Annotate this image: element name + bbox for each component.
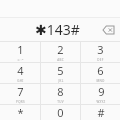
staticText: 7 [17, 84, 24, 99]
button[interactable]: 8 [41, 84, 80, 104]
staticText: 2 [57, 42, 64, 57]
staticText: * [17, 105, 24, 120]
staticText: ✱143# [35, 20, 80, 39]
button[interactable]: 9 [81, 84, 120, 104]
staticText: ABC [57, 58, 64, 62]
staticText: 0 [57, 105, 64, 120]
staticText: 5 [57, 63, 64, 78]
staticText: 1 [17, 42, 24, 57]
staticText: 9 [98, 84, 105, 99]
staticText: 8 [57, 84, 64, 99]
button[interactable]: 0 [41, 105, 80, 120]
staticText: # [97, 105, 105, 120]
staticText: 3 [97, 42, 104, 57]
staticText: 4 [17, 63, 24, 78]
button[interactable]: 4 [0, 63, 40, 83]
staticText: MNO [96, 79, 105, 83]
staticText: JKL [58, 79, 64, 83]
staticText: GHI [17, 79, 24, 83]
button[interactable]: 5 [41, 63, 80, 83]
staticText: 6 [97, 63, 104, 78]
button[interactable]: 7 [0, 84, 40, 104]
button[interactable]: * [0, 105, 40, 120]
button[interactable]: 3 [81, 42, 120, 62]
button[interactable]: Backspace [100, 22, 116, 38]
button[interactable]: 1 [0, 42, 40, 62]
staticText: WXYZ [96, 100, 106, 104]
button[interactable]: 6 [81, 63, 120, 83]
staticText: PQRS [16, 100, 25, 104]
button[interactable]: # [81, 105, 120, 120]
staticText: DEF [97, 58, 104, 62]
button[interactable]: 2 [41, 42, 80, 62]
staticText: ∞◦• [17, 58, 24, 62]
staticText: TUV [57, 100, 64, 104]
